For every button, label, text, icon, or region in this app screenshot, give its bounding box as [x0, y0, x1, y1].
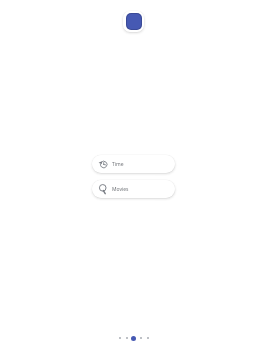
staticText: Movies — [112, 186, 129, 193]
button[interactable]: Page 4 — [137, 334, 144, 342]
button[interactable]: Page 2 — [123, 334, 130, 342]
button[interactable]: Page 5 — [144, 334, 151, 342]
staticText: Time — [112, 161, 124, 168]
button[interactable]: Open app — [123, 11, 144, 32]
button[interactable]: Page 3 — [130, 334, 137, 342]
button[interactable]: Movies — [92, 180, 175, 198]
button[interactable]: Time — [92, 155, 175, 173]
button[interactable]: Page 1 — [116, 334, 123, 342]
